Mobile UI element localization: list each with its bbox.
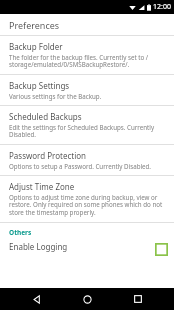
- staticText: Adjust Time Zone: [9, 181, 75, 192]
- button[interactable]: Backup Settings: [0, 75, 174, 105]
- button[interactable]: Enable Logging checkbox: [155, 243, 168, 256]
- button[interactable]: Recent apps: [124, 288, 152, 310]
- staticText: Options to adjust time zone during backu…: [9, 193, 168, 217]
- staticText: Others: [9, 228, 32, 237]
- staticText: Options to setup a Password. Currently D…: [9, 162, 151, 170]
- button[interactable]: Scheduled Backups: [0, 106, 174, 144]
- staticText: Various settings for the Backup.: [9, 92, 102, 100]
- staticText: Backup Folder: [9, 41, 63, 52]
- staticText: Backup Settings: [9, 80, 70, 91]
- button[interactable]: Enable Logging: [0, 238, 174, 256]
- staticText: 12:00: [153, 2, 171, 12]
- staticText: The folder for the backup files. Current…: [9, 53, 168, 69]
- staticText: Edit the settings for Scheduled Backups.…: [9, 123, 168, 139]
- button[interactable]: Adjust Time Zone: [0, 176, 174, 222]
- staticText: Password Protection: [9, 150, 87, 161]
- button[interactable]: Home: [73, 288, 101, 310]
- staticText: Preferences: [9, 19, 60, 31]
- staticText: Enable Logging: [9, 241, 68, 252]
- button[interactable]: Password Protection: [0, 145, 174, 175]
- button[interactable]: Backup Folder: [0, 36, 174, 74]
- button[interactable]: Back: [23, 288, 51, 310]
- staticText: Scheduled Backups: [9, 111, 82, 122]
